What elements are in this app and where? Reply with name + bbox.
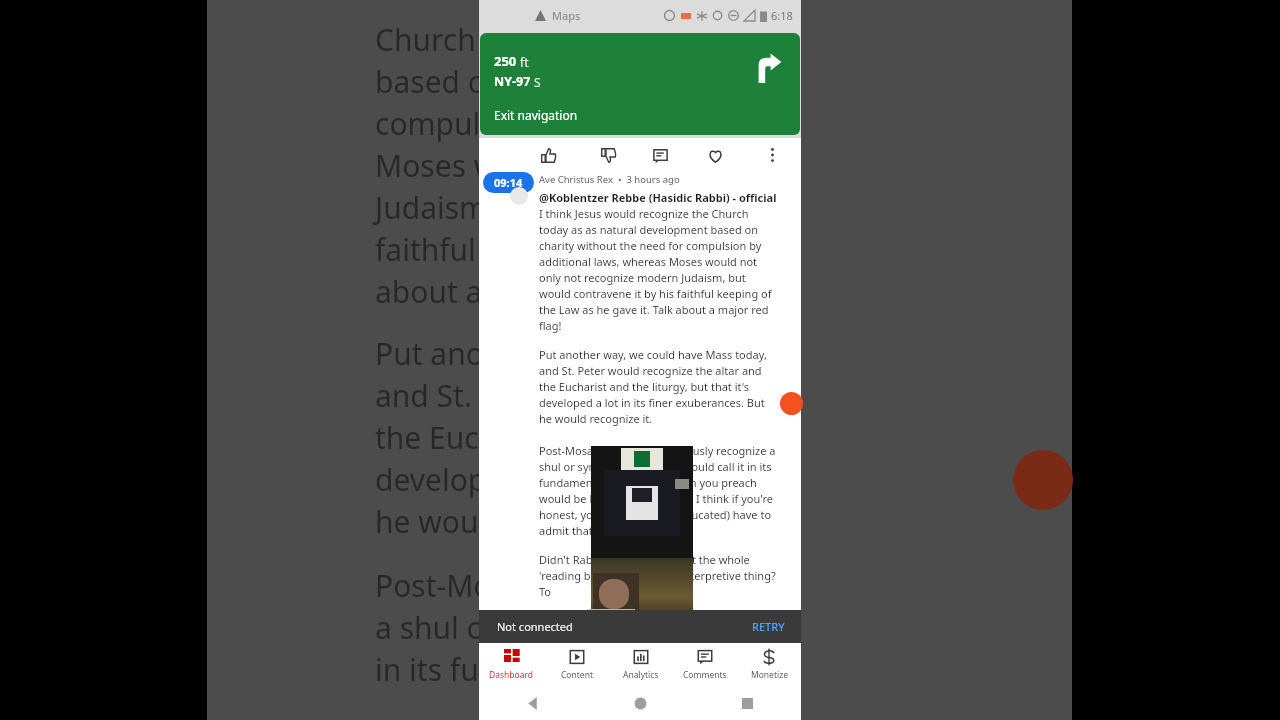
staticText: ft (520, 54, 529, 70)
staticText: Put another way, we could have Mass toda… (539, 347, 777, 426)
staticText: he would recognize it. (375, 501, 684, 542)
other: Turn right (752, 53, 782, 83)
button[interactable]: Reply (647, 142, 673, 168)
button[interactable]: 09:14 (483, 172, 534, 193)
staticText: compulsion by additional laws (375, 103, 800, 144)
button[interactable]: Live chat (780, 392, 803, 415)
staticText: Exit navigation (494, 107, 578, 123)
button[interactable]: Back (479, 686, 587, 720)
button[interactable]: Monetize (737, 643, 801, 686)
button[interactable]: RETRY (736, 613, 801, 640)
staticText: developed a lot in its finer ex (375, 459, 780, 500)
staticText: Monetize (751, 669, 788, 681)
button[interactable]: Comments (673, 643, 737, 686)
staticText: S (534, 74, 541, 90)
staticText: based on charity without the (375, 61, 779, 102)
staticText: Comments (683, 669, 727, 681)
staticText: a shul or synagogue and ca (375, 607, 762, 648)
staticText: Not connected (497, 619, 573, 634)
staticText: Put another way, we could ha (375, 333, 790, 374)
button[interactable]: Recent apps (694, 686, 801, 720)
staticText: Post-Mosaic Jews would ob (375, 565, 754, 606)
staticText: RETRY (752, 619, 785, 634)
button[interactable]: Dashboard (479, 643, 544, 686)
staticText: 6:18 (771, 8, 793, 23)
button[interactable]: Exit navigation (494, 107, 578, 123)
staticText: NY-97 (494, 73, 531, 90)
button[interactable]: Dislike (595, 142, 621, 168)
button[interactable]: More options (757, 140, 787, 170)
staticText: Dashboard (489, 669, 534, 681)
button[interactable]: Analytics (609, 643, 673, 686)
staticText: 250 (494, 52, 517, 70)
button[interactable]: Content (544, 643, 609, 686)
button[interactable]: Like (535, 142, 561, 168)
staticText: Moses would not only not rec (375, 145, 790, 186)
staticText: Ave Christus Rex • 3 hours ago (539, 173, 680, 186)
staticText: 09:14 (494, 175, 523, 190)
staticText: Church today as as natural (375, 19, 751, 60)
staticText: about a major red flag! (375, 271, 698, 312)
staticText: Judaism, but would contraven (375, 187, 795, 228)
staticText: faithful keeping of the Law as (375, 229, 790, 270)
staticText: @Koblentzer Rebbe (Hasidic Rabbi) - offi… (539, 190, 777, 333)
staticText: Post-Mosaic Jews would obviously recogni… (539, 443, 777, 538)
button[interactable]: Video preview (591, 446, 693, 635)
staticText: the Eucharist and the liturgy, (375, 417, 781, 458)
staticText: and St. Peter would recognize (375, 375, 795, 416)
staticText: Maps (552, 8, 581, 23)
staticText: Didn't Rabbinic Judaism invent the whole… (539, 552, 777, 599)
button[interactable]: Home (587, 686, 694, 720)
button[interactable]: 250 (480, 33, 800, 135)
staticText: Analytics (623, 669, 659, 681)
staticText: in its fundamentals. But the (375, 649, 765, 690)
button[interactable]: Favorite (702, 142, 728, 168)
staticText: Content (561, 669, 593, 681)
